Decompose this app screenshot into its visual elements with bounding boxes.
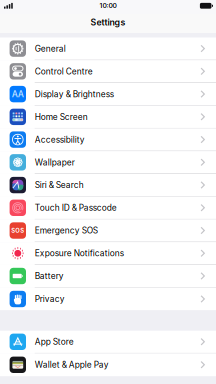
button[interactable]: Siri & Search: [0, 174, 216, 197]
button[interactable]: Wallet & Apple Pay: [0, 353, 216, 376]
staticText: Wallet & Apple Pay: [35, 360, 109, 370]
staticText: Battery: [35, 271, 64, 281]
staticText: 10:00: [99, 2, 116, 10]
staticText: General: [35, 43, 66, 54]
staticText: Siri & Search: [35, 180, 84, 190]
staticText: Control Centre: [35, 66, 93, 76]
button[interactable]: Wallpaper: [0, 151, 216, 174]
button[interactable]: App Store: [0, 331, 216, 353]
staticText: Display & Brightness: [35, 89, 114, 99]
staticText: Home Screen: [35, 112, 88, 122]
button[interactable]: SOS: [0, 219, 216, 242]
staticText: Wallpaper: [35, 157, 75, 167]
button[interactable]: Touch ID & Passcode: [0, 197, 216, 219]
button[interactable]: Home Screen: [0, 106, 216, 128]
staticText: AA: [12, 89, 24, 99]
button[interactable]: Battery: [0, 265, 216, 288]
button[interactable]: Exposure Notifications: [0, 242, 216, 265]
button[interactable]: Control Centre: [0, 60, 216, 83]
staticText: Emergency SOS: [35, 225, 98, 236]
staticText: SOS: [11, 227, 24, 234]
staticText: Exposure Notifications: [35, 248, 124, 258]
button[interactable]: Privacy: [0, 288, 216, 310]
staticText: Settings: [90, 17, 125, 27]
button[interactable]: Accessibility: [0, 128, 216, 151]
button[interactable]: General: [0, 37, 216, 60]
staticText: App Store: [35, 337, 74, 347]
staticText: Accessibility: [35, 134, 85, 145]
staticText: Privacy: [35, 294, 65, 304]
button[interactable]: AA: [0, 83, 216, 106]
staticText: Touch ID & Passcode: [35, 203, 117, 213]
